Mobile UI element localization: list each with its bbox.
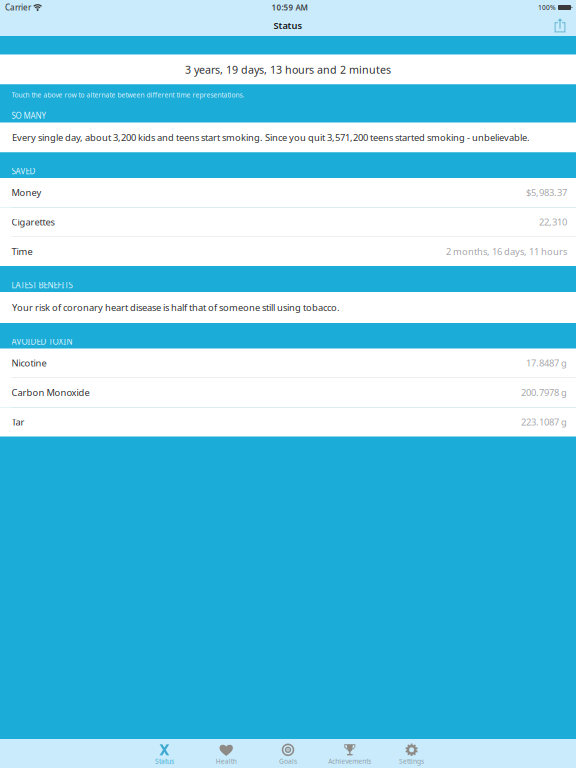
staticText: $5,983.37	[526, 186, 567, 199]
staticText: Your risk of coronary heart disease is h…	[12, 301, 340, 314]
staticText: Money	[11, 186, 41, 199]
staticText: Carrier	[5, 2, 31, 13]
staticText: LATEST BENEFITS	[11, 280, 72, 290]
staticText: Every single day, about 3,200 kids and t…	[12, 131, 530, 144]
staticText: 3 years, 19 days, 13 hours and 2 minutes	[185, 62, 391, 77]
staticText: SAVED	[11, 166, 35, 176]
staticText: Achievements	[328, 757, 371, 765]
staticText: Time	[11, 245, 32, 258]
staticText: Nicotine	[11, 357, 46, 369]
staticText: SO MANY	[11, 110, 46, 121]
button[interactable]: Tar	[0, 407, 576, 436]
staticText: Touch the above row to alternate between…	[11, 91, 244, 99]
button[interactable]: Share	[549, 15, 571, 36]
staticText: AVOIDED TOXIN	[11, 336, 72, 347]
button[interactable]: Achievements	[319, 739, 381, 768]
button[interactable]: Health	[195, 739, 257, 768]
button[interactable]: Money	[0, 178, 576, 207]
button[interactable]: Settings	[381, 739, 442, 768]
staticText: Cigarettes	[11, 216, 54, 228]
staticText: 17.8487 g	[526, 357, 567, 369]
staticText: 22,310	[539, 216, 567, 228]
staticText: 200.7978 g	[521, 386, 567, 399]
staticText: 10:59 AM	[272, 2, 308, 13]
staticText: 223.1087 g	[521, 416, 567, 428]
button[interactable]: 3 years, 19 days, 13 hours and 2 minutes	[0, 54, 576, 84]
button[interactable]: Your risk of coronary heart disease is h…	[0, 292, 576, 323]
button[interactable]: Goals	[257, 739, 319, 768]
staticText: 100%	[538, 3, 556, 12]
button[interactable]: Time	[0, 237, 576, 266]
button[interactable]: Nicotine	[0, 348, 576, 378]
button[interactable]: Every single day, about 3,200 kids and t…	[0, 122, 576, 152]
button[interactable]: Cigarettes	[0, 207, 576, 237]
button[interactable]: Status	[133, 739, 195, 768]
staticText: Carbon Monoxide	[11, 386, 89, 399]
staticText: Goals	[279, 757, 297, 765]
staticText: Status	[273, 19, 302, 32]
staticText: Settings	[399, 757, 424, 765]
staticText: Tar	[11, 416, 24, 428]
staticText: 2 months, 16 days, 11 hours	[446, 245, 567, 258]
staticText: Status	[155, 757, 174, 765]
staticText: Health	[216, 757, 237, 765]
button[interactable]: Carbon Monoxide	[0, 378, 576, 407]
